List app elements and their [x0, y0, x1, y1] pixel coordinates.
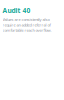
staticText: Values are consistently also require an … — [2, 17, 51, 33]
staticText: Audit 40 — [2, 6, 30, 15]
